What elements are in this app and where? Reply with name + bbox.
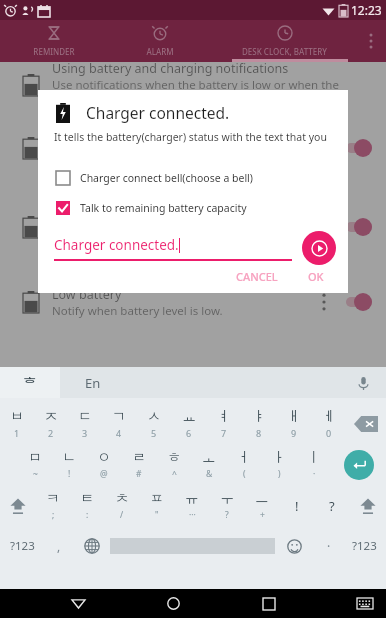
button[interactable]: Shift [349,485,386,526]
button[interactable]: ㅊ [104,485,139,526]
button[interactable]: More options [312,131,336,165]
button[interactable]: More options [312,285,336,319]
button[interactable]: ? [314,485,349,526]
staticText: 6 [186,427,192,439]
button[interactable]: ?123 [0,526,44,566]
button[interactable]: Toggle [340,215,376,239]
button[interactable]: Charger connect bell(choose a bell) [38,169,348,187]
button[interactable]: ㄷ [68,403,102,444]
button[interactable]: Toggle [340,290,376,314]
button[interactable]: CANCEL [228,265,286,285]
button[interactable]: ㅗ [191,444,226,485]
staticText: ㅎ [167,449,181,467]
staticText: Using battery and charging notifications [52,60,289,77]
button[interactable]: ㅡ [244,485,279,526]
button[interactable]: ?123 [343,526,386,566]
button[interactable]: ㅓ [226,444,261,485]
staticText: Talk to remaining battery capacity [80,201,247,215]
staticText: · [313,468,316,480]
staticText: # [136,468,142,480]
button[interactable]: ㅍ [139,485,174,526]
staticText: ㅗ [202,449,216,467]
button[interactable]: DESK CLOCK, BATTERY [213,20,356,62]
staticText: ㅡ [255,490,269,508]
button[interactable]: ㅛ [171,403,206,444]
button[interactable]: ㅑ [241,403,276,444]
button[interactable]: REMINDER [0,20,107,62]
button[interactable]: Emoji [275,526,314,566]
staticText: 2 [48,427,54,439]
staticText: 12:23 [351,2,382,18]
button[interactable]: ㅅ [136,403,171,444]
button[interactable]: ㅠ [174,485,209,526]
staticText: ㅈ [44,408,58,426]
button[interactable]: Voice input [352,372,374,394]
staticText: Use notifications when the battery is lo… [52,77,376,93]
button[interactable]: · [314,526,343,566]
button[interactable]: ㅏ [261,444,296,485]
staticText: ~ [33,468,38,480]
button[interactable]: ㅇ [86,444,121,485]
button[interactable]: Toggle [340,136,376,160]
button[interactable]: OK [300,265,332,285]
staticText: + [260,509,265,521]
button[interactable]: ㄱ [102,403,136,444]
button[interactable]: ㅣ [296,444,331,485]
button[interactable]: , [44,526,73,566]
button[interactable]: Backspace [346,403,386,444]
button[interactable]: Shift [0,485,36,526]
button[interactable]: Switch keyboard [348,589,382,618]
button[interactable]: ! [279,485,314,526]
button[interactable]: ㅋ [36,485,70,526]
staticText: ? [225,509,229,521]
button[interactable]: More options [356,20,386,62]
button[interactable]: ㅕ [206,403,241,444]
button[interactable]: ㅌ [70,485,104,526]
button[interactable]: ㅎ [156,444,191,485]
staticText: En [85,374,101,392]
button[interactable]: Home [156,589,190,618]
button[interactable]: More options [312,210,336,244]
button[interactable]: Korean [0,367,60,398]
staticText: ㅜ [220,490,234,508]
staticText: " [155,509,159,521]
staticText: DESK CLOCK, BATTERY [242,46,327,57]
button[interactable]: ㄴ [52,444,86,485]
staticText: Low battery [52,286,122,303]
staticText: ㅋ [46,490,60,508]
button[interactable]: ALARM [107,20,213,62]
button[interactable]: ㅈ [34,403,68,444]
button[interactable]: ㄹ [121,444,156,485]
button[interactable]: Enter [331,444,386,485]
button[interactable]: Recents [252,589,286,618]
staticText: , [57,538,61,554]
staticText: charged. (Always displayed) [52,93,201,109]
staticText: It tells the battery(charger) status wit… [54,130,338,144]
staticText: ! [295,497,299,515]
button[interactable]: ㅁ [18,444,52,485]
staticText: ㄹ [132,449,146,467]
button[interactable]: Back [61,589,95,618]
button[interactable]: Talk to remaining battery capacity [38,199,348,217]
staticText: OK [308,269,324,281]
staticText: ㄴ [62,449,76,467]
staticText: CANCEL [236,269,278,281]
staticText: : [86,509,89,521]
staticText: ㅁ [28,449,42,467]
button[interactable]: Play [302,231,336,265]
button[interactable]: ㅂ [0,403,34,444]
button[interactable]: ㅜ [209,485,244,526]
staticText: ㅊ [115,490,129,508]
staticText: ㄱ [112,408,126,426]
button[interactable]: Change language [73,526,110,566]
button[interactable]: ㅐ [276,403,311,444]
button[interactable]: En [85,367,101,398]
staticText: Low battery [52,123,122,140]
button[interactable]: ㅔ [311,403,346,444]
staticText: ^ [172,468,177,480]
staticText: Charging completion [52,186,176,203]
staticText: ) [278,468,281,480]
staticText: ! [68,468,71,480]
